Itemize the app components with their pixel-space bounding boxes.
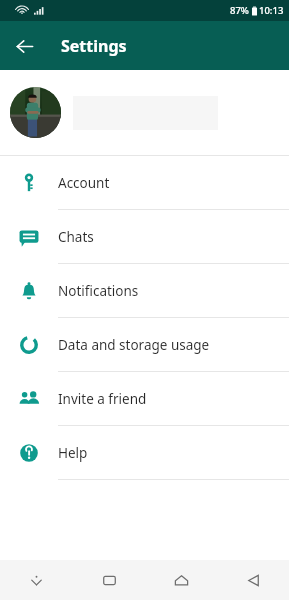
button[interactable]: Chats bbox=[0, 210, 289, 263]
button[interactable]: Back bbox=[217, 560, 289, 600]
staticText: 10:13 bbox=[259, 4, 284, 17]
staticText: 87% bbox=[230, 4, 249, 17]
button[interactable]: Notifications bbox=[0, 264, 289, 317]
staticText: Data and storage usage bbox=[58, 336, 210, 354]
button[interactable]: Help bbox=[0, 426, 289, 479]
staticText: Invite a friend bbox=[58, 390, 147, 408]
button[interactable]: Data and storage usage bbox=[0, 318, 289, 371]
button[interactable]: Home bbox=[145, 560, 217, 600]
staticText: Settings bbox=[61, 35, 127, 57]
button[interactable]: Recent apps bbox=[73, 560, 145, 600]
button[interactable]: Account bbox=[0, 156, 289, 209]
staticText: Notifications bbox=[58, 282, 139, 300]
button[interactable]: Hide keyboard bbox=[0, 560, 73, 600]
button[interactable]: Back bbox=[9, 31, 39, 61]
staticText: Chats bbox=[58, 228, 94, 246]
button[interactable]: Invite a friend bbox=[0, 372, 289, 425]
button[interactable] bbox=[0, 70, 289, 155]
staticText: Account bbox=[58, 174, 110, 192]
staticText: Help bbox=[58, 444, 88, 462]
